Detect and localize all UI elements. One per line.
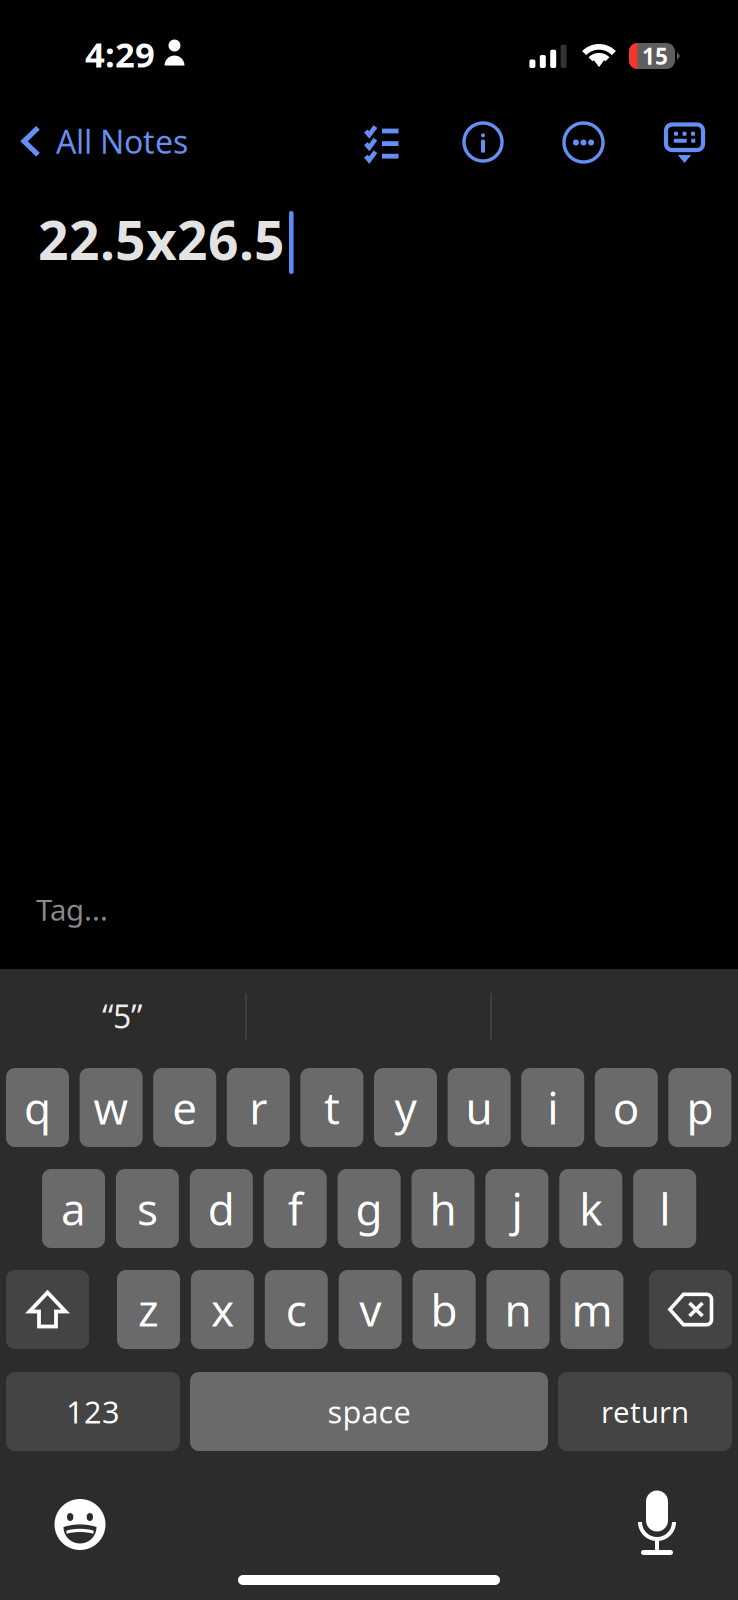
button[interactable]: b — [413, 1270, 476, 1349]
button[interactable]: k — [559, 1169, 622, 1248]
button[interactable]: Tag... — [28, 880, 116, 939]
staticText: o — [613, 1078, 640, 1137]
button[interactable]: All Notes — [21, 111, 200, 171]
staticText: w — [94, 1078, 129, 1137]
staticText: c — [286, 1280, 307, 1339]
staticText: i — [547, 1078, 558, 1137]
staticText: 22.5x26.5 — [38, 204, 285, 275]
staticText: Tag... — [36, 890, 108, 929]
button[interactable]: a — [42, 1169, 105, 1248]
staticText: g — [356, 1179, 383, 1238]
button[interactable]: Hide Keyboard — [653, 110, 716, 176]
button[interactable]: Emoji — [40, 1485, 119, 1564]
staticText: k — [579, 1179, 602, 1238]
button[interactable]: return — [558, 1372, 732, 1451]
button[interactable]: w — [80, 1068, 143, 1147]
staticText: v — [359, 1280, 381, 1339]
button[interactable]: e — [153, 1068, 216, 1147]
staticText: 4:29 — [85, 31, 155, 77]
button[interactable]: i — [521, 1068, 584, 1147]
button[interactable]: o — [595, 1068, 658, 1147]
staticText: e — [172, 1078, 197, 1137]
button[interactable]: p — [668, 1068, 731, 1147]
button[interactable]: Note Details — [450, 109, 516, 175]
button[interactable]: g — [338, 1169, 401, 1248]
button[interactable]: Delete — [649, 1270, 732, 1349]
staticText: q — [24, 1078, 51, 1137]
staticText: r — [249, 1078, 267, 1137]
button[interactable]: Dictate — [623, 1476, 691, 1568]
button[interactable]: m — [560, 1270, 623, 1349]
staticText: space — [327, 1391, 410, 1432]
staticText: l — [659, 1179, 670, 1238]
staticText: z — [138, 1280, 159, 1339]
staticText: f — [288, 1179, 303, 1238]
staticText: 123 — [66, 1391, 120, 1432]
button[interactable]: c — [265, 1270, 328, 1349]
button[interactable]: space — [190, 1372, 548, 1451]
staticText: d — [208, 1179, 235, 1238]
button[interactable]: Note body — [38, 204, 738, 844]
staticText: s — [137, 1179, 158, 1238]
button[interactable]: Shift — [6, 1270, 89, 1349]
button[interactable]: q — [6, 1068, 69, 1147]
button[interactable]: r — [227, 1068, 290, 1147]
button[interactable]: l — [633, 1169, 696, 1248]
staticText: b — [431, 1280, 458, 1339]
button[interactable]: u — [448, 1068, 511, 1147]
button[interactable]: 123 — [6, 1372, 180, 1451]
staticText: u — [466, 1078, 493, 1137]
staticText: h — [429, 1179, 456, 1238]
staticText: x — [211, 1280, 234, 1339]
button[interactable]: “5” — [0, 981, 244, 1051]
button[interactable]: z — [117, 1270, 180, 1349]
staticText: p — [686, 1078, 713, 1137]
staticText: t — [324, 1078, 340, 1137]
staticText: m — [571, 1280, 612, 1339]
button[interactable]: v — [339, 1270, 402, 1349]
button[interactable]: d — [190, 1169, 253, 1248]
button[interactable]: t — [300, 1068, 363, 1147]
staticText: 15 — [642, 41, 668, 71]
button[interactable]: More — [550, 109, 617, 176]
staticText: return — [601, 1392, 689, 1431]
button[interactable]: x — [191, 1270, 254, 1349]
staticText: j — [511, 1179, 522, 1238]
staticText: y — [394, 1078, 416, 1137]
staticText: “5” — [102, 995, 142, 1037]
staticText: n — [504, 1280, 531, 1339]
button[interactable]: h — [411, 1169, 474, 1248]
button[interactable]: s — [116, 1169, 179, 1248]
button[interactable]: j — [485, 1169, 548, 1248]
staticText: a — [61, 1179, 86, 1238]
button[interactable]: n — [486, 1270, 549, 1349]
staticText: All Notes — [56, 120, 188, 162]
button[interactable]: Checklist — [351, 113, 413, 170]
button[interactable]: f — [264, 1169, 327, 1248]
button[interactable]: y — [374, 1068, 437, 1147]
